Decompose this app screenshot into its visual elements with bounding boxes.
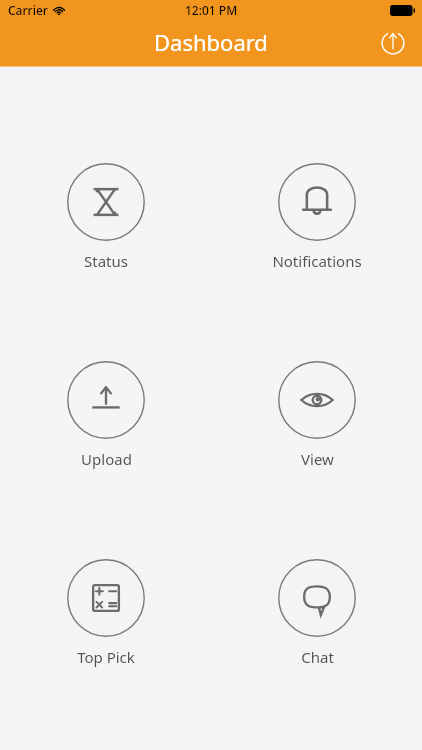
staticText: Status — [84, 251, 128, 271]
button[interactable]: Top Pick — [36, 557, 176, 669]
staticText: View — [301, 449, 334, 469]
staticText: Upload — [81, 449, 132, 469]
button[interactable]: View — [247, 359, 387, 471]
button[interactable]: Notifications — [247, 161, 387, 273]
button[interactable]: Upload — [36, 359, 176, 471]
button[interactable]: Status — [36, 161, 176, 273]
staticText: Notifications — [272, 251, 362, 271]
staticText: Chat — [301, 647, 334, 667]
button[interactable]: Chat — [247, 557, 387, 669]
staticText: Carrier — [8, 2, 48, 18]
staticText: Dashboard — [154, 27, 268, 57]
staticText: Top Pick — [77, 647, 135, 667]
button[interactable]: Share — [374, 24, 412, 62]
staticText: 12:01 PM — [185, 2, 238, 18]
